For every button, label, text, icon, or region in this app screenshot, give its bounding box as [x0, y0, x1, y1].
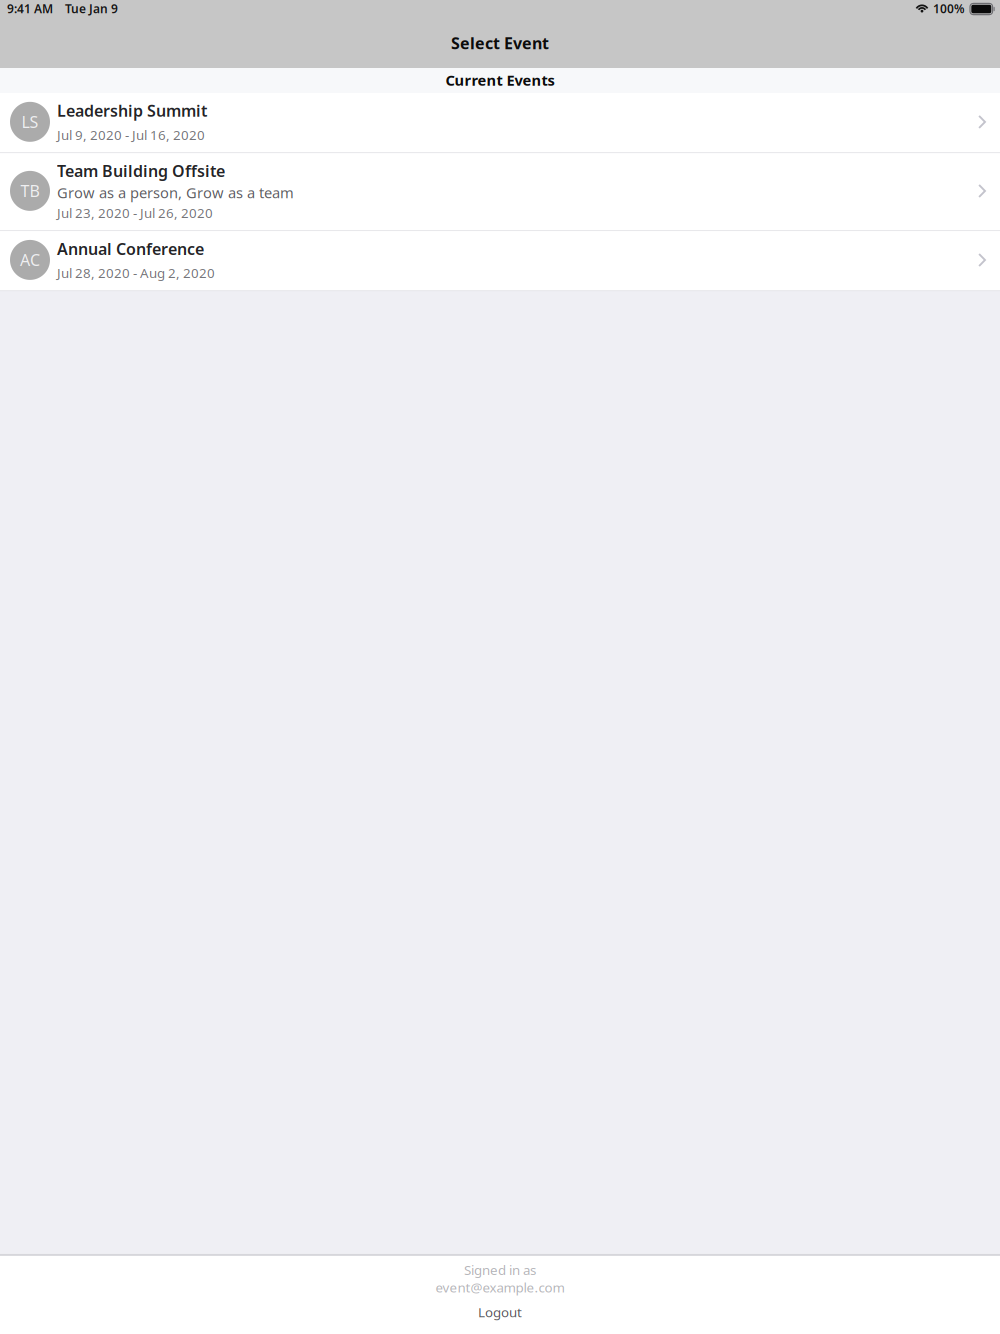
- staticText: LS: [21, 111, 38, 132]
- button[interactable]: AC: [0, 231, 1000, 290]
- button[interactable]: LS: [0, 93, 1000, 152]
- staticText: TB: [20, 180, 39, 201]
- button[interactable]: TB: [0, 153, 1000, 230]
- staticText: Select Event: [451, 32, 549, 54]
- staticText: Grow as a person, Grow as a team: [57, 183, 294, 202]
- staticText: Tue Jan 9: [65, 1, 118, 16]
- staticText: event@example.com: [435, 1279, 564, 1296]
- staticText: Jul 23, 2020 - Jul 26, 2020: [57, 204, 213, 222]
- staticText: Logout: [478, 1303, 522, 1321]
- staticText: 100%: [933, 1, 965, 16]
- staticText: Team Building Offsite: [57, 160, 225, 181]
- staticText: Annual Conference: [57, 238, 204, 259]
- staticText: Signed in as: [464, 1261, 536, 1279]
- staticText: Jul 28, 2020 - Aug 2, 2020: [57, 264, 215, 282]
- staticText: AC: [20, 249, 40, 270]
- button[interactable]: Logout: [0, 1296, 1000, 1334]
- staticText: Current Events: [445, 70, 554, 90]
- staticText: 9:41 AM: [7, 1, 53, 16]
- staticText: Leadership Summit: [57, 100, 207, 121]
- staticText: Jul 9, 2020 - Jul 16, 2020: [57, 126, 205, 144]
